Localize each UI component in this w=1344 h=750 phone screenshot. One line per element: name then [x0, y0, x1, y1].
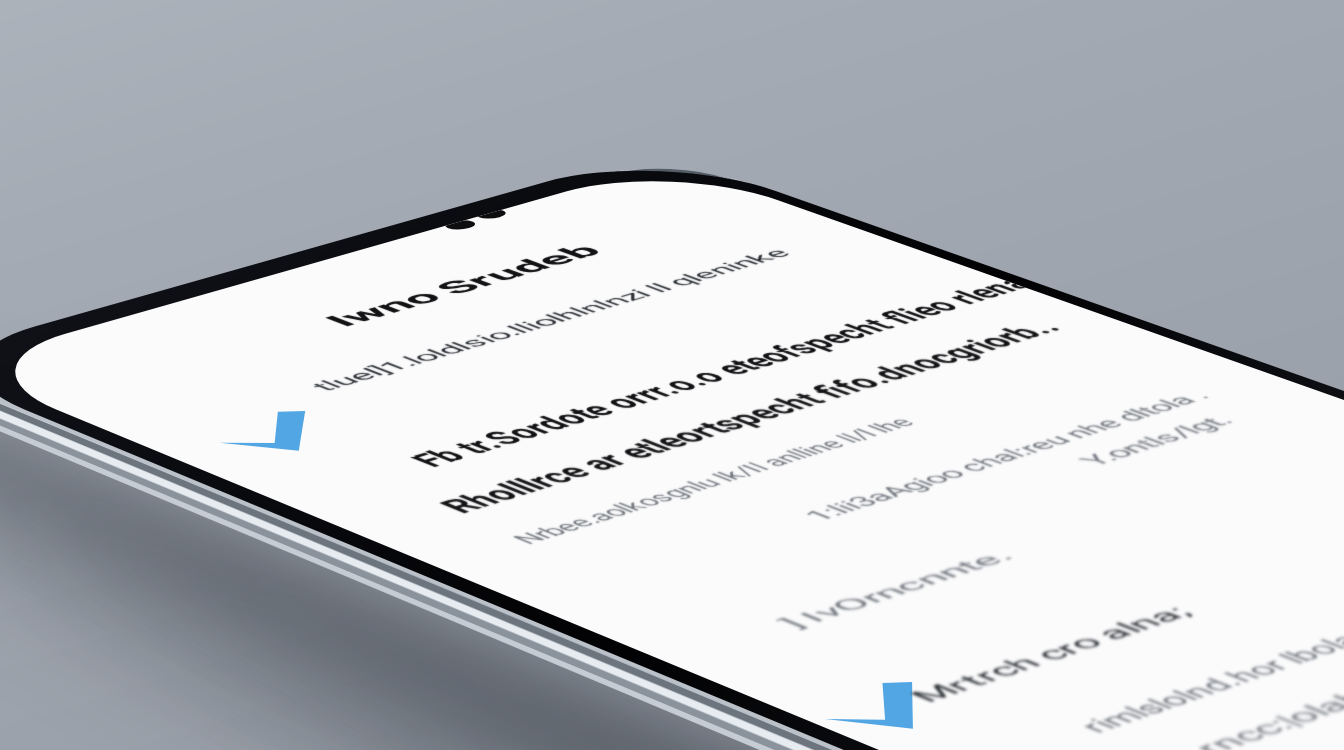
button[interactable]: Smartphone showing a list screen	[0, 0, 1344, 750]
